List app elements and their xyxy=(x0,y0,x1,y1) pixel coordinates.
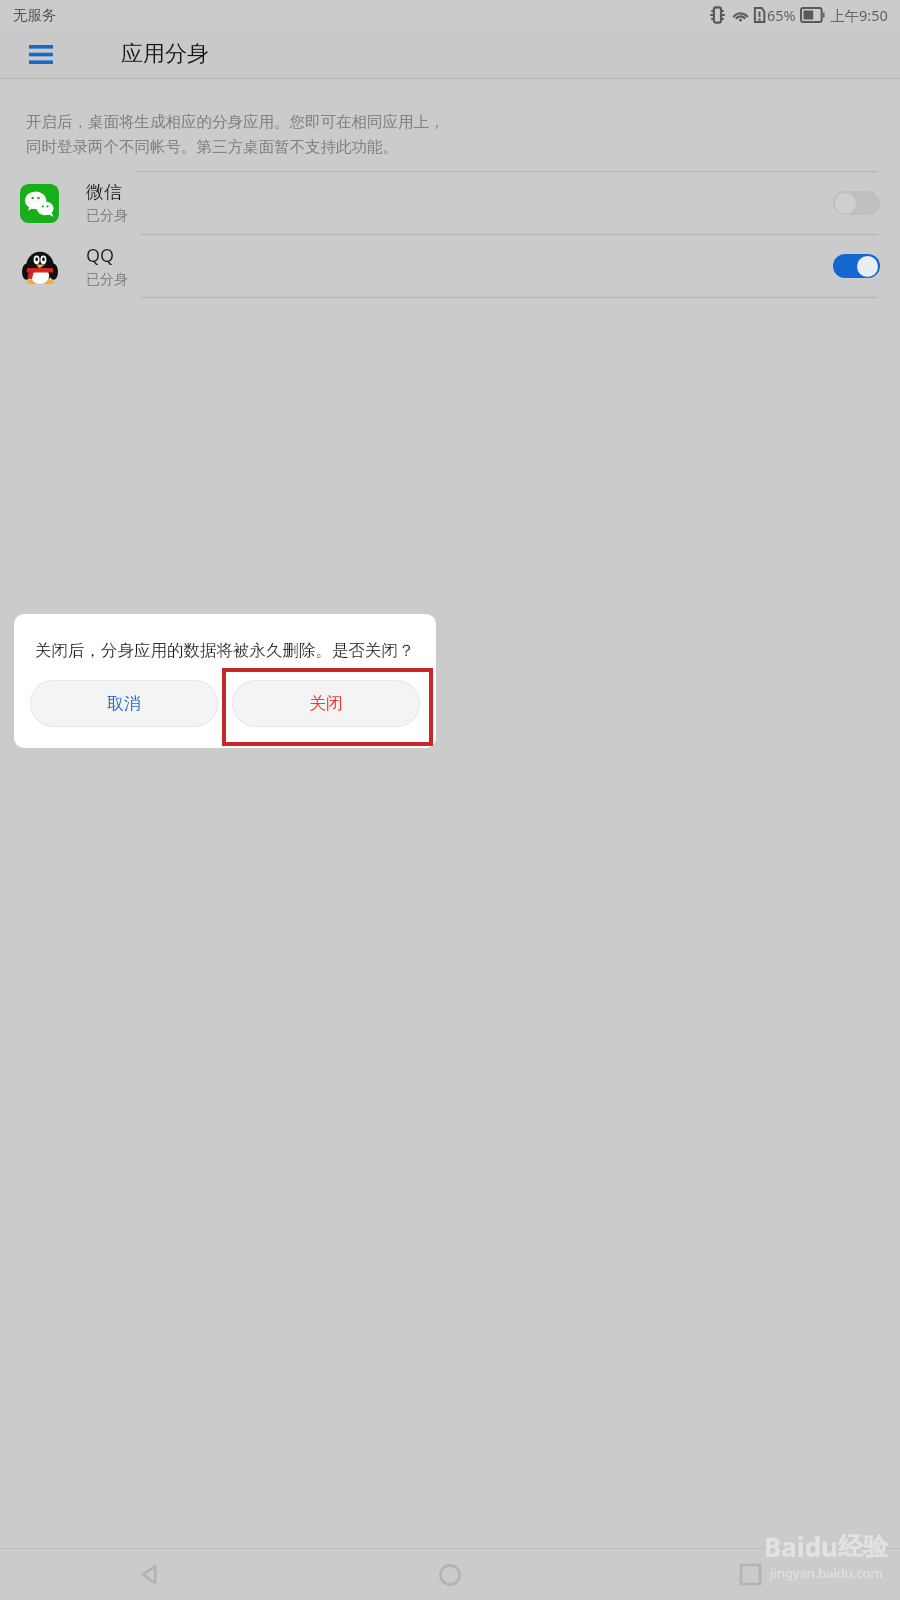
button[interactable]: Off xyxy=(833,191,880,215)
staticText: 关闭 xyxy=(309,693,343,714)
button[interactable]: 关闭 xyxy=(232,680,420,727)
button[interactable]: QQ xyxy=(0,235,900,297)
staticText: 微信 xyxy=(86,181,122,204)
button[interactable]: Menu xyxy=(22,35,60,73)
staticText: 上午9:50 xyxy=(830,5,888,25)
staticText: Baidu xyxy=(764,1529,838,1564)
button[interactable]: 微信 xyxy=(0,172,900,234)
staticText: 应用分身 xyxy=(121,40,209,68)
staticText: 无服务 xyxy=(13,6,57,24)
staticText: 已分身 xyxy=(86,271,128,289)
staticText: 已分身 xyxy=(86,207,128,225)
button[interactable]: Recents xyxy=(600,1549,900,1600)
staticText: QQ xyxy=(86,243,115,268)
staticText: 取消 xyxy=(107,693,141,714)
staticText: 开启后，桌面将生成相应的分身应用。您即可在相同应用上， xyxy=(26,112,445,132)
staticText: 同时登录两个不同帐号。第三方桌面暂不支持此功能。 xyxy=(26,137,398,157)
staticText: jingyan.baidu.com xyxy=(770,1564,883,1582)
button[interactable]: On xyxy=(833,254,880,278)
staticText: 经验 xyxy=(838,1531,888,1562)
staticText: 65% xyxy=(767,5,796,25)
staticText: 关闭后，分身应用的数据将被永久删除。是否关闭？ xyxy=(35,640,415,661)
button[interactable]: 取消 xyxy=(30,680,218,727)
